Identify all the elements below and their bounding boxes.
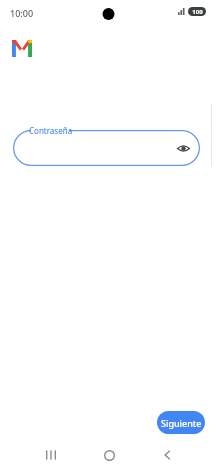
staticText: 10:00 [10,7,34,19]
staticText: Siguiente [161,417,202,429]
button[interactable]: Inicio [96,442,122,468]
button[interactable]: Atrás [155,442,181,468]
button[interactable]: Siguiente [157,411,205,434]
button[interactable]: Recientes [38,442,64,468]
staticText: 100 [192,8,203,16]
button[interactable]: Mostrar contraseña [174,139,192,157]
staticText: Contraseña [29,125,73,136]
button[interactable]: Contraseña [13,130,200,166]
